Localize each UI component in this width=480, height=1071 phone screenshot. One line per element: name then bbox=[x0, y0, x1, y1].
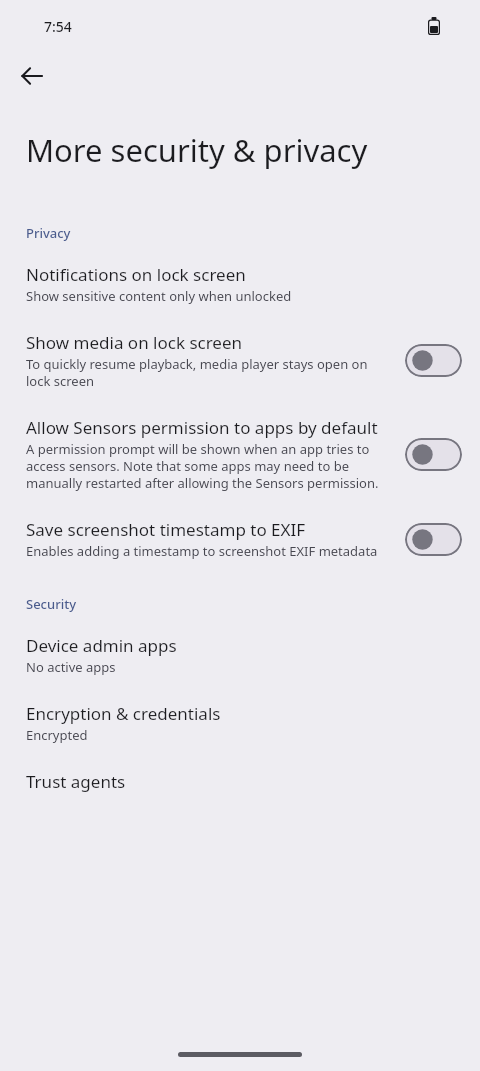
button[interactable]: Toggle bbox=[405, 523, 462, 556]
staticText: Device admin apps bbox=[26, 634, 177, 657]
staticText: Enables adding a timestamp to screenshot… bbox=[26, 543, 378, 560]
button[interactable]: Trust agents bbox=[0, 757, 480, 806]
staticText: To quickly resume playback, media player… bbox=[26, 356, 395, 390]
button[interactable]: Notifications on lock screen bbox=[0, 250, 480, 318]
staticText: Show media on lock screen bbox=[26, 331, 243, 354]
button[interactable]: Device admin apps bbox=[0, 621, 480, 689]
button[interactable]: Save screenshot timestamp to EXIF bbox=[0, 505, 480, 573]
button[interactable]: Show media on lock screen bbox=[0, 318, 480, 403]
button[interactable]: Encryption & credentials bbox=[0, 689, 480, 757]
staticText: A permission prompt will be shown when a… bbox=[26, 441, 395, 492]
staticText: Encrypted bbox=[26, 727, 88, 744]
staticText: Trust agents bbox=[26, 770, 126, 793]
staticText: Encryption & credentials bbox=[26, 702, 221, 725]
staticText: Security bbox=[26, 595, 76, 613]
button[interactable]: Back bbox=[8, 52, 56, 100]
staticText: Notifications on lock screen bbox=[26, 263, 246, 286]
button[interactable]: Toggle bbox=[405, 344, 462, 377]
button[interactable]: Allow Sensors permission to apps by defa… bbox=[0, 403, 480, 505]
staticText: Show sensitive content only when unlocke… bbox=[26, 288, 292, 305]
staticText: Privacy bbox=[26, 224, 71, 242]
staticText: Save screenshot timestamp to EXIF bbox=[26, 518, 306, 541]
button[interactable]: Toggle bbox=[405, 438, 462, 471]
staticText: More security & privacy bbox=[26, 132, 368, 170]
staticText: 7:54 bbox=[44, 17, 72, 36]
staticText: No active apps bbox=[26, 659, 116, 676]
staticText: Allow Sensors permission to apps by defa… bbox=[26, 416, 378, 439]
